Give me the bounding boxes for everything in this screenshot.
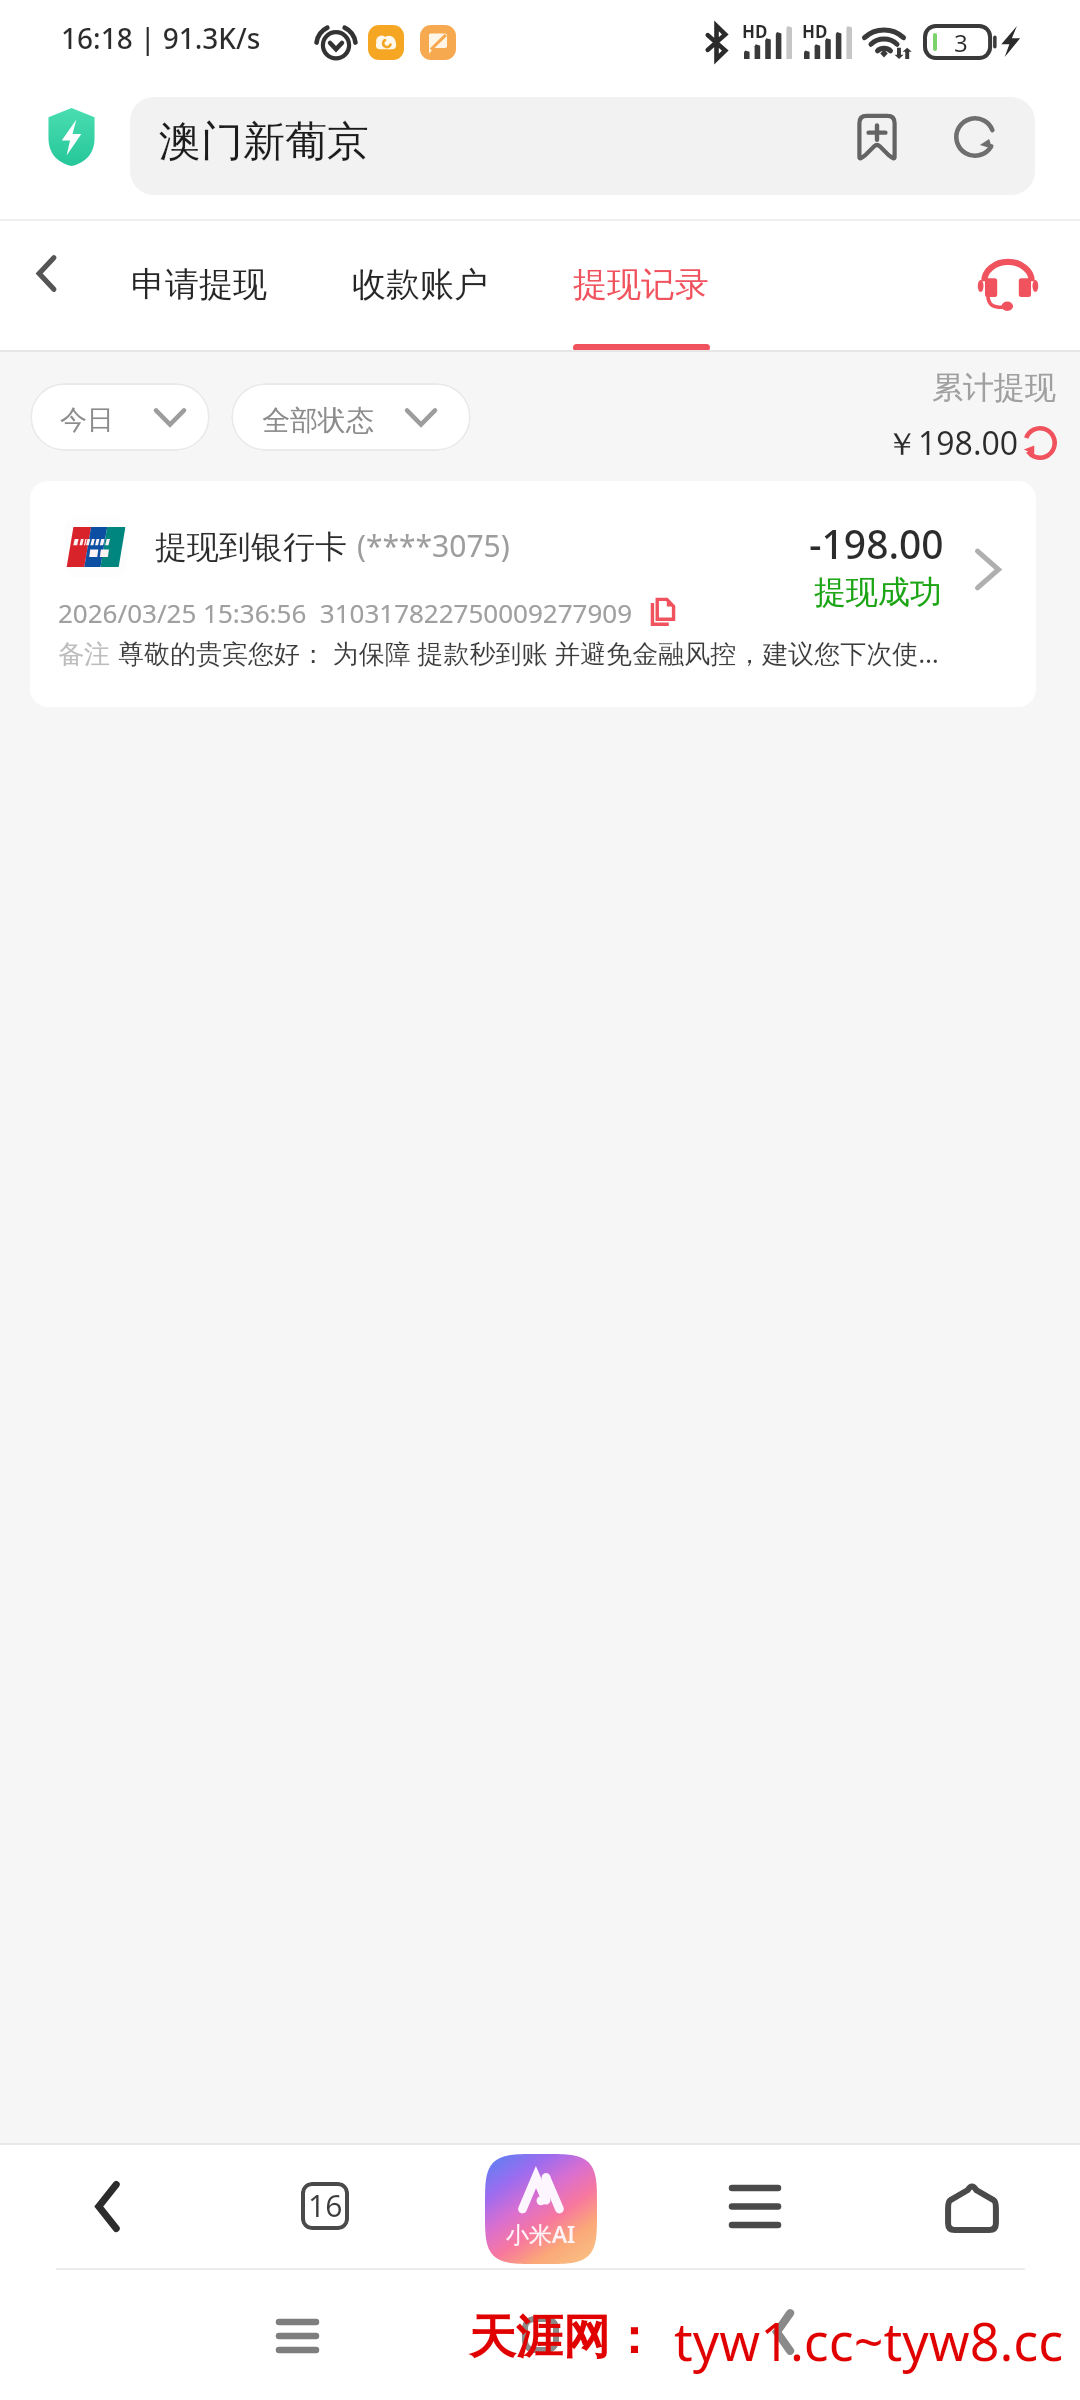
staticText: 今日 [60,403,114,437]
button[interactable]: Back [12,239,80,307]
staticText: 收款账户 [352,263,488,306]
button[interactable]: Back [58,2157,156,2255]
staticText: 全部状态 [262,403,374,438]
staticText: 累计提现 [932,368,1056,407]
button[interactable]: Refresh total [1014,417,1066,469]
staticText: 提现成功 [814,572,942,612]
staticText: (****3075) [357,525,510,566]
staticText: 澳门新葡京 [159,116,369,169]
staticText: tyw1.cc~tyw8.cc [674,2305,1064,2376]
staticText: 尊敬的贵宾您好： 为保障 提款秒到账 并避免金融风控，建议您下次使… [118,635,1018,671]
staticText: 提现记录 [573,263,709,306]
button[interactable]: Xiaomi AI assistant [479,2147,603,2271]
button[interactable]: Home [923,2157,1021,2255]
staticText: 16 [308,2185,343,2226]
button[interactable]: 提现到银行卡 [30,481,1036,707]
staticText: 天涯网： [469,2308,657,2367]
staticText: ￥198.00 [886,421,1019,465]
staticText: HD [742,20,768,43]
staticText: 申请提现 [131,263,267,306]
staticText: -198.00 [809,517,944,570]
button[interactable]: Customer service [969,245,1047,323]
button[interactable]: 收款账户 [332,243,508,331]
button[interactable]: 今日 [30,383,210,451]
button[interactable]: Site security [47,108,96,166]
button[interactable]: Menu [706,2157,804,2255]
staticText: 备注 [58,638,110,671]
button[interactable]: Add bookmark [840,109,914,183]
button[interactable]: Home [492,2286,588,2382]
staticText: HD [802,20,828,43]
staticText: 提现到银行卡 [155,527,347,567]
button[interactable]: Refresh page [938,109,1012,183]
button[interactable]: 提现记录 [553,243,729,331]
staticText: 小米AI [506,2218,576,2249]
button[interactable]: Copy order number [643,592,683,632]
button[interactable]: 申请提现 [111,243,287,331]
staticText: 16:18 | 91.3K/s [61,19,261,57]
button[interactable]: Back [735,2284,831,2380]
button[interactable]: 全部状态 [231,383,471,451]
button[interactable]: Recent apps [249,2288,345,2384]
staticText: 2026/03/25 15:36:56 31031782275000927790… [58,595,633,630]
button[interactable]: Tabs, 16 open [276,2157,374,2255]
staticText: 3 [954,26,968,58]
button[interactable]: 澳门新葡京 [130,97,1035,195]
